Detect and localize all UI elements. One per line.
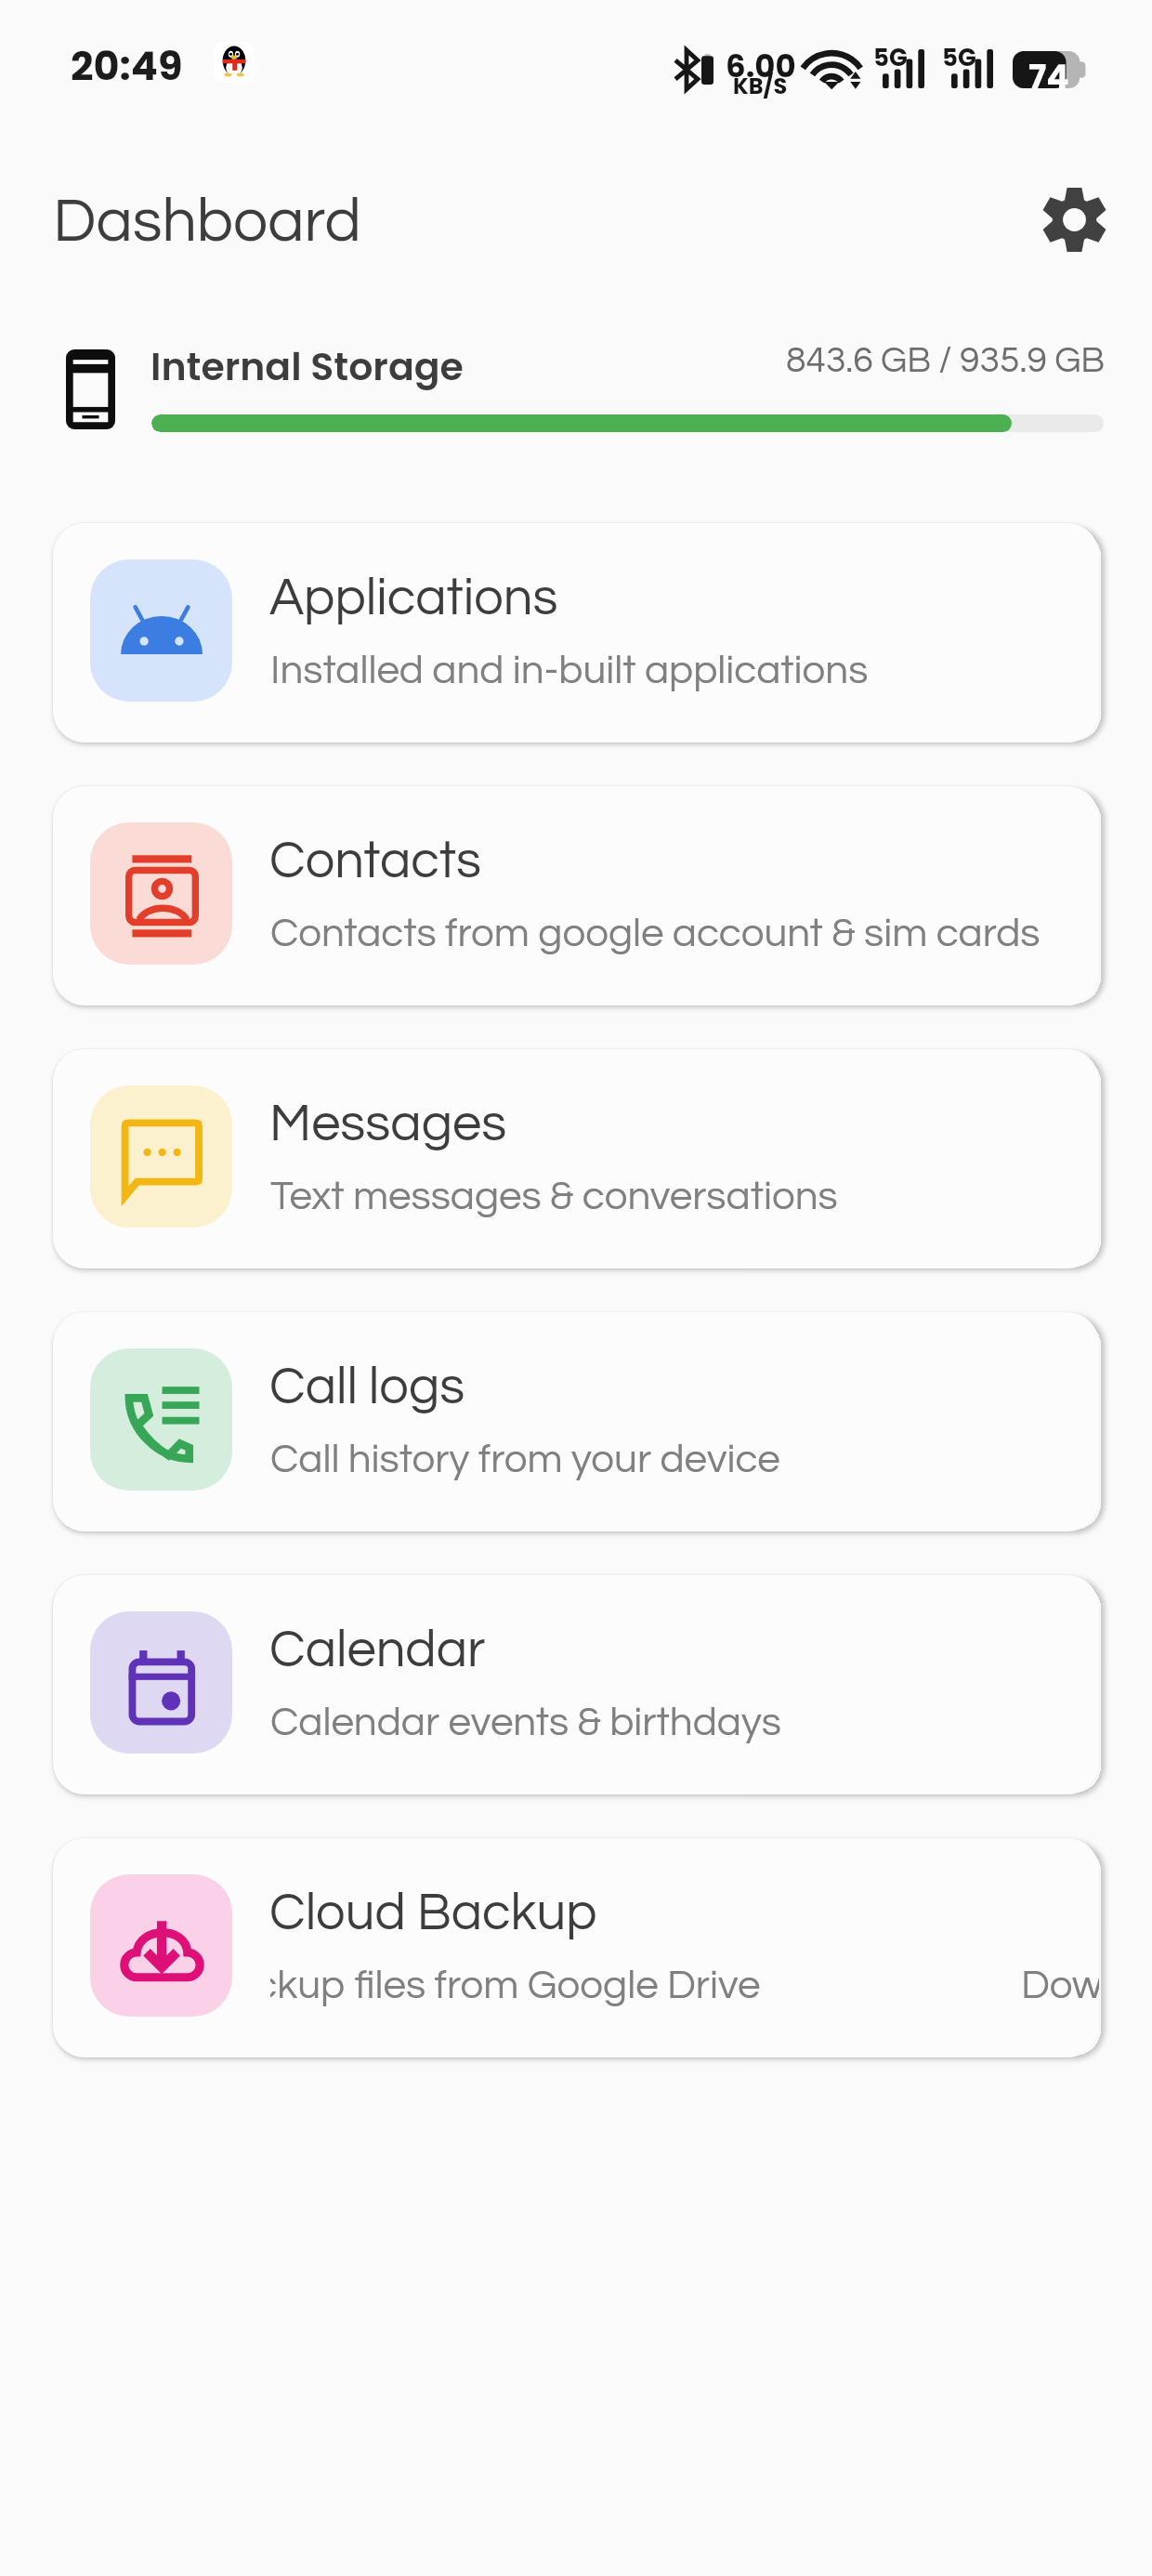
button[interactable]: Applications (53, 523, 1099, 743)
button[interactable]: Calendar (53, 1575, 1099, 1794)
staticText: Dashboard (53, 191, 361, 254)
button[interactable]: Messages (53, 1049, 1099, 1268)
staticText: 5G (873, 41, 908, 74)
button[interactable]: Settings (1032, 177, 1116, 261)
staticText: Calendar events & birthdays (270, 1702, 781, 1743)
staticText: 20:49 (71, 38, 183, 94)
staticText: Messages (269, 1097, 507, 1151)
staticText: Contacts (269, 835, 481, 888)
staticText: Internal Storage (151, 340, 464, 393)
button[interactable]: Contacts (53, 786, 1099, 1005)
staticText: Installed and in-built applications (270, 650, 869, 691)
button[interactable]: Call logs (53, 1312, 1099, 1531)
staticText: Cloud Backup (269, 1886, 597, 1940)
staticText: Download backup files from Google Drive … (270, 1965, 1099, 2006)
staticText: Contacts from google account & sim cards (270, 913, 1041, 954)
staticText: Call logs (269, 1360, 465, 1414)
staticText: Call history from your device (270, 1439, 780, 1480)
staticText: 5G (942, 41, 976, 74)
staticText: 843.6 GB / 935.9 GB (786, 342, 1106, 379)
staticText: Text messages & conversations (270, 1176, 838, 1217)
button[interactable]: Cloud Backup (53, 1838, 1099, 2057)
staticText: Calendar (269, 1623, 486, 1677)
staticText: 6.00 (726, 44, 796, 88)
staticText: KB/S (733, 71, 788, 102)
staticText: 74 (1028, 54, 1069, 91)
staticText: Applications (269, 572, 558, 625)
